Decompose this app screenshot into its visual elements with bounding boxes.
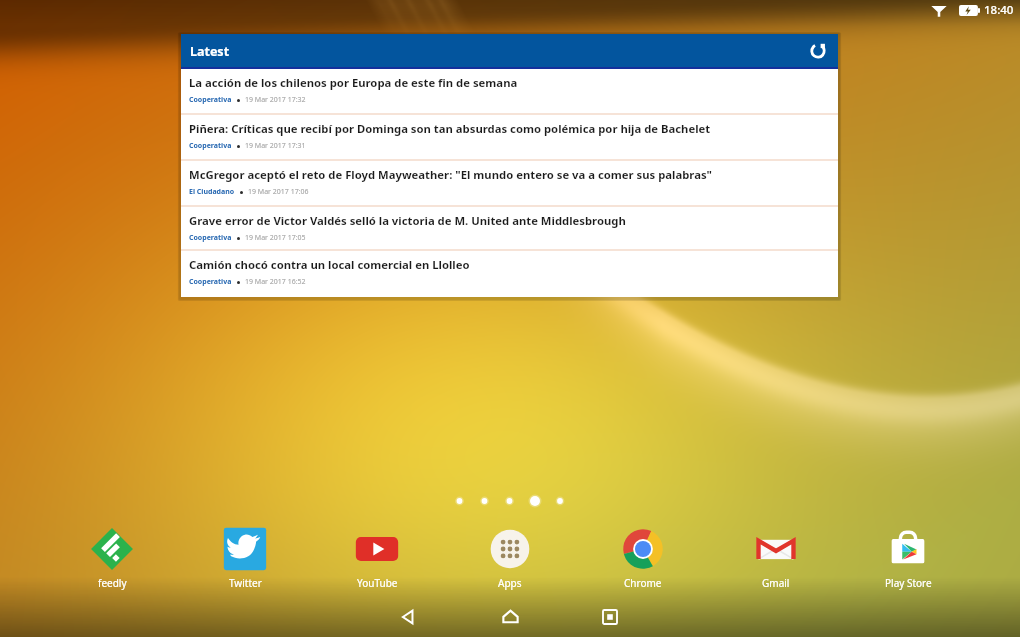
- staticText: Apps: [498, 576, 522, 590]
- button[interactable]: Camión chocó contra un local comercial e…: [181, 251, 838, 297]
- button[interactable]: Home: [466, 596, 554, 637]
- staticText: 19 Mar 2017 17:06: [248, 187, 309, 197]
- button[interactable]: feedly: [62, 526, 162, 590]
- staticText: Chrome: [624, 576, 662, 590]
- button[interactable]: Piñera: Críticas que recibí por Dominga …: [181, 115, 838, 159]
- button[interactable]: McGregor aceptó el reto de Floyd Mayweat…: [181, 161, 838, 205]
- staticText: 19 Mar 2017 17:05: [245, 233, 306, 243]
- button[interactable]: Apps: [460, 526, 560, 590]
- button[interactable]: Twitter: [195, 526, 295, 590]
- staticText: Cooperativa: [189, 95, 232, 105]
- button[interactable]: Chrome: [593, 526, 693, 590]
- button[interactable]: Gmail: [726, 526, 826, 590]
- button[interactable]: Grave error de Victor Valdés selló la vi…: [181, 207, 838, 249]
- staticText: Cooperativa: [189, 233, 232, 243]
- staticText: Latest: [190, 43, 230, 60]
- staticText: Play Store: [885, 576, 932, 590]
- staticText: Cooperativa: [189, 277, 232, 287]
- staticText: 18:40: [984, 2, 1014, 18]
- button[interactable]: YouTube: [327, 526, 427, 590]
- button[interactable]: Refresh: [807, 40, 829, 62]
- staticText: McGregor aceptó el reto de Floyd Mayweat…: [189, 167, 713, 182]
- staticText: Twitter: [229, 576, 262, 590]
- staticText: 19 Mar 2017 16:52: [245, 277, 306, 287]
- staticText: Gmail: [762, 576, 790, 590]
- button[interactable]: La acción de los chilenos por Europa de …: [181, 69, 838, 113]
- staticText: Piñera: Críticas que recibí por Dominga …: [189, 121, 711, 136]
- staticText: El Ciudadano: [189, 187, 235, 197]
- staticText: YouTube: [357, 576, 398, 590]
- staticText: feedly: [98, 576, 127, 590]
- staticText: Grave error de Victor Valdés selló la vi…: [189, 213, 626, 228]
- staticText: Camión chocó contra un local comercial e…: [189, 257, 470, 272]
- staticText: 19 Mar 2017 17:32: [245, 95, 306, 105]
- staticText: Cooperativa: [189, 141, 232, 151]
- staticText: 19 Mar 2017 17:31: [245, 141, 306, 151]
- button[interactable]: Back: [364, 596, 452, 637]
- button[interactable]: Play Store: [858, 526, 958, 590]
- staticText: La acción de los chilenos por Europa de …: [189, 75, 518, 90]
- button[interactable]: Latest: [181, 34, 838, 67]
- button[interactable]: Recents: [566, 596, 654, 637]
